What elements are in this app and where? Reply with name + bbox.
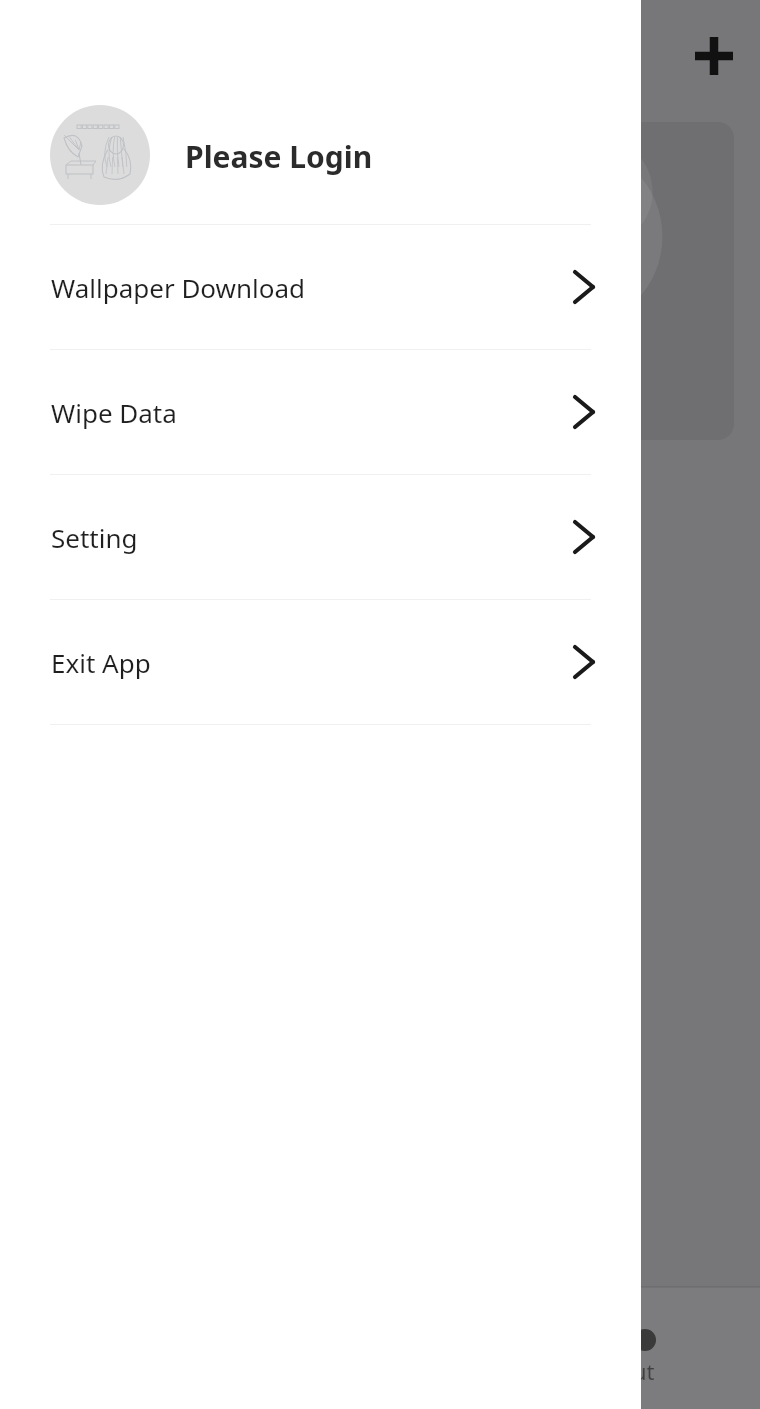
staticText: Setting xyxy=(51,520,566,555)
staticText: Please Login xyxy=(185,136,373,177)
button[interactable]: Exit App xyxy=(0,600,641,724)
button[interactable]: Wallpaper Download xyxy=(0,225,641,349)
staticText: ut xyxy=(633,1356,655,1386)
button[interactable]: Wipe Data xyxy=(0,350,641,474)
staticText: Exit App xyxy=(51,645,566,680)
staticText: Wipe Data xyxy=(51,395,566,430)
button[interactable]: Add xyxy=(684,26,744,86)
staticText: Wallpaper Download xyxy=(51,270,566,305)
button[interactable]: Please Login xyxy=(185,126,373,186)
button[interactable]: Setting xyxy=(0,475,641,599)
